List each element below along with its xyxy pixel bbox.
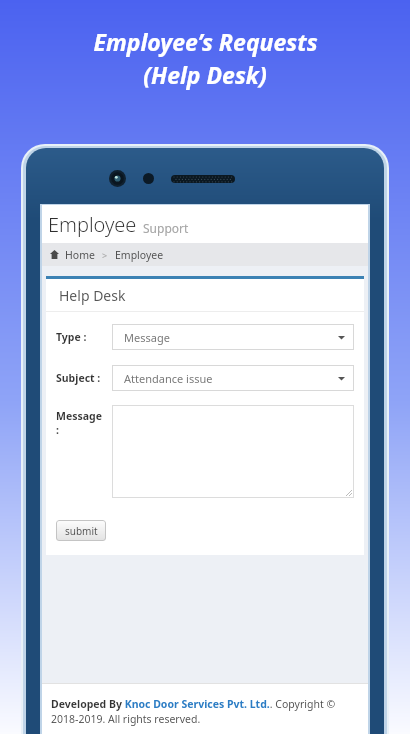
staticText: Employee (115, 248, 164, 262)
staticText: Message (56, 409, 102, 423)
staticText: Message (124, 330, 170, 345)
staticText: submit (65, 524, 98, 538)
staticText: Help Desk (59, 286, 126, 305)
staticText: Home (65, 248, 95, 262)
staticText: (Help Desk) (143, 59, 267, 90)
button[interactable]: Attendance issue (112, 365, 354, 391)
staticText: : (56, 423, 59, 437)
staticText: Developed By Knoc Door Services Pvt. Ltd… (51, 697, 360, 726)
button[interactable]: Home (65, 248, 95, 262)
staticText: Employee’s Requests (93, 26, 318, 57)
other: Home (50, 250, 59, 259)
button[interactable] (112, 405, 354, 498)
staticText: Support (143, 220, 189, 236)
button[interactable]: submit (56, 520, 106, 541)
button[interactable]: Message (112, 324, 354, 350)
staticText: > (102, 249, 108, 261)
staticText: Employee (48, 211, 137, 238)
staticText: Type : (56, 330, 87, 344)
staticText: Attendance issue (124, 371, 213, 386)
staticText: Subject : (56, 371, 101, 385)
